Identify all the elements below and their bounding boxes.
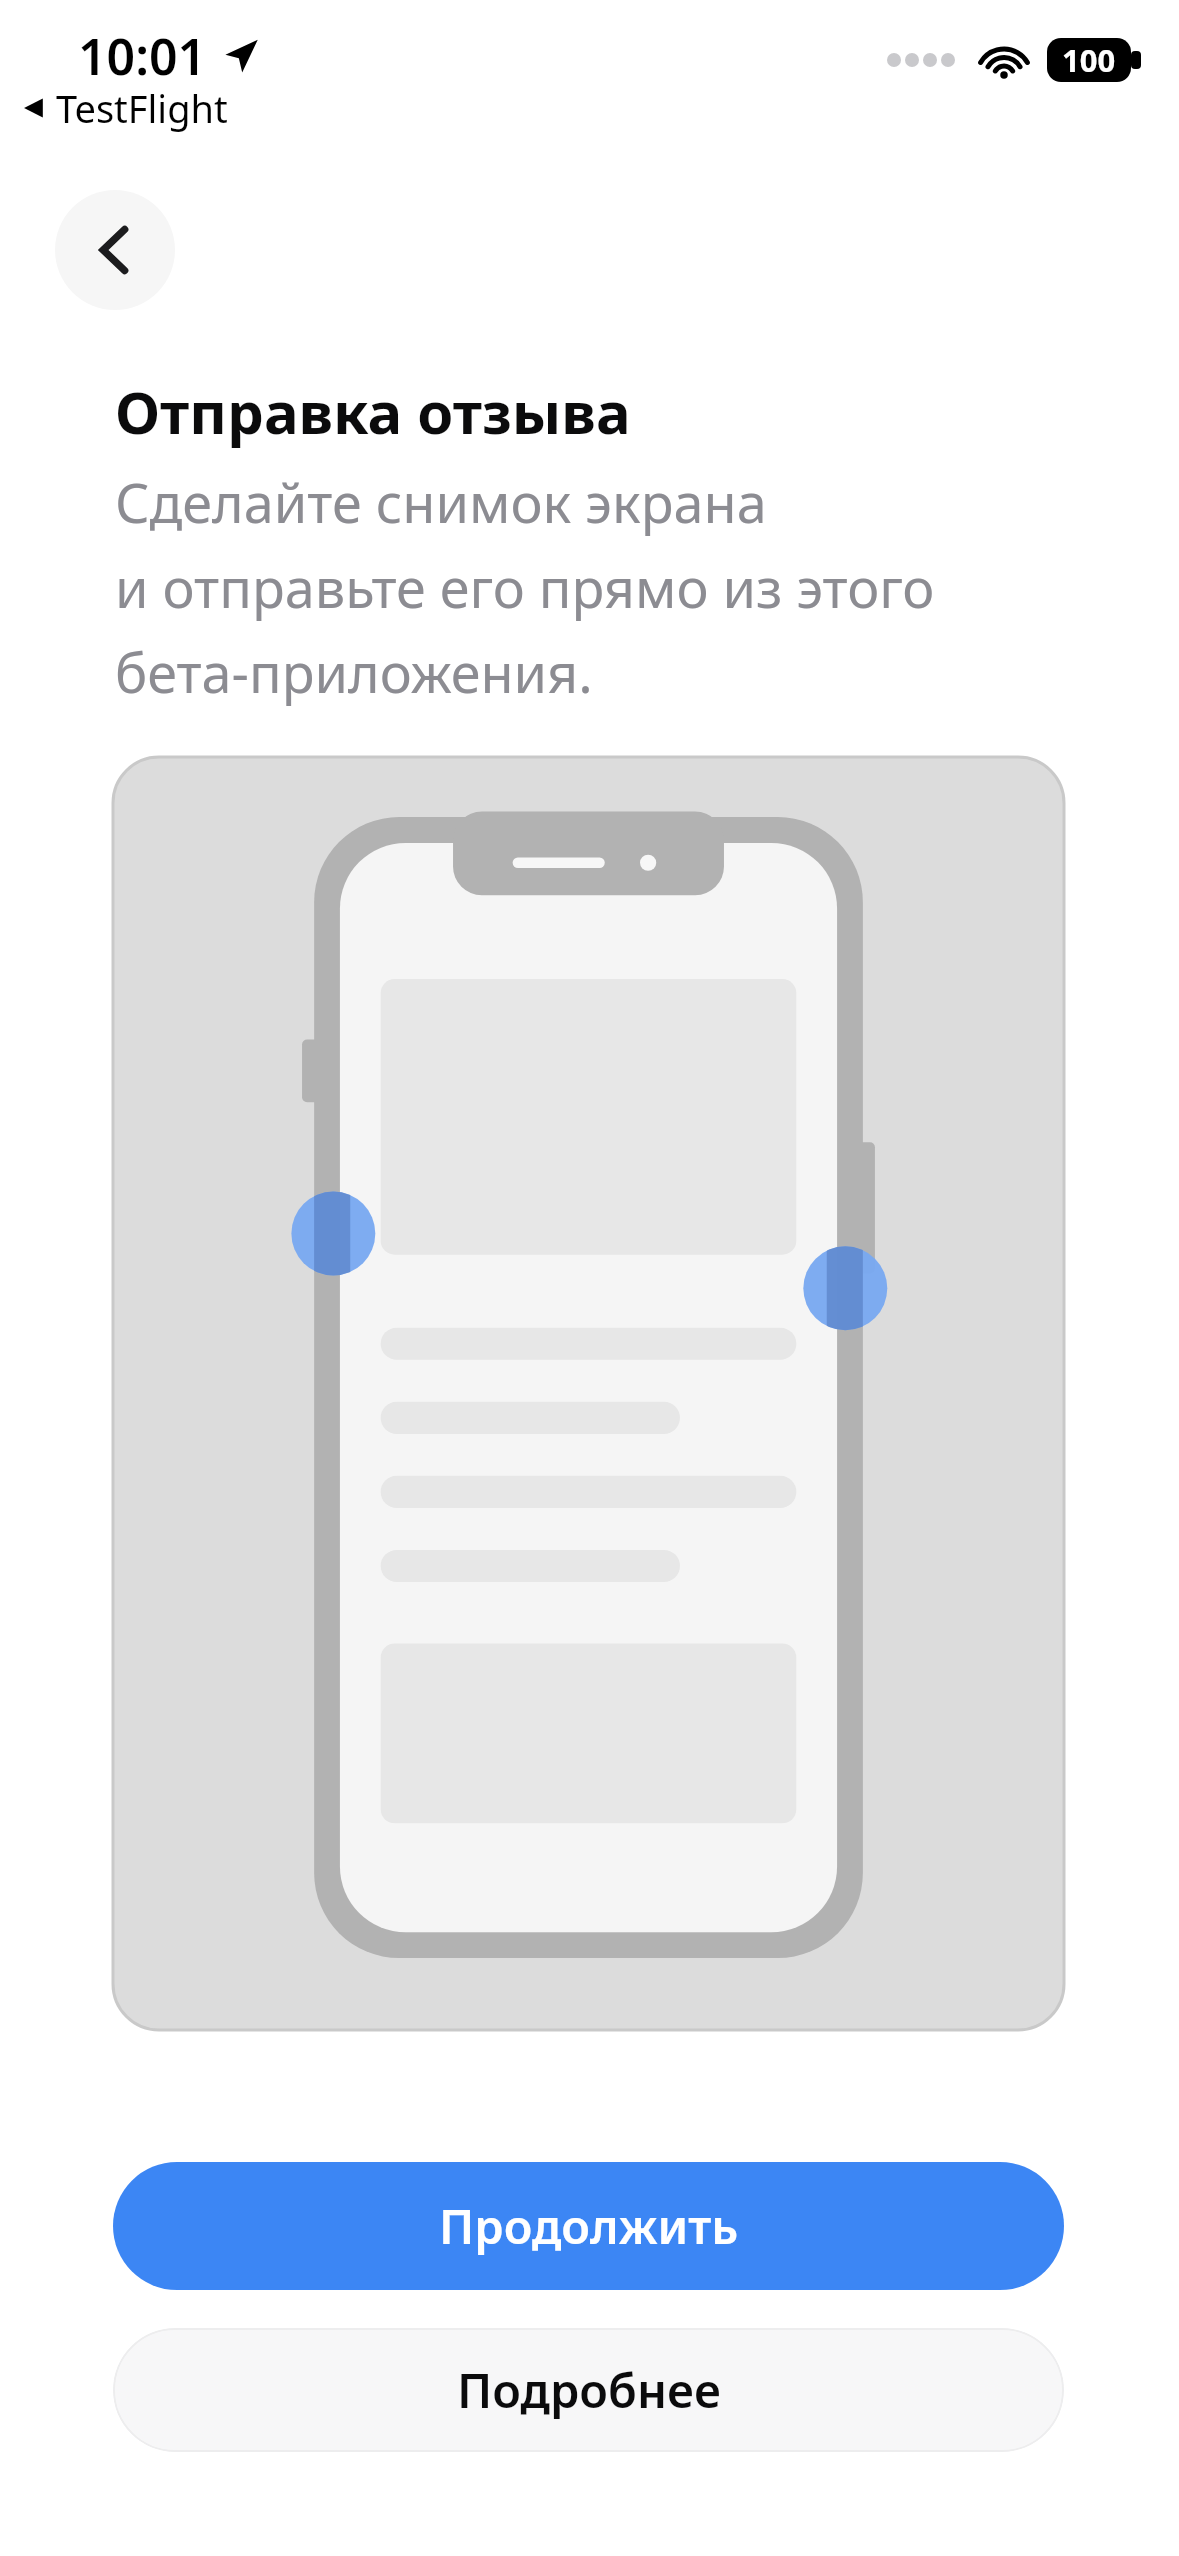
button[interactable]: Продолжить (113, 2162, 1064, 2290)
staticText: Отправка отзыва (115, 372, 631, 451)
button[interactable]: Подробнее (113, 2328, 1064, 2452)
staticText: 100 (1062, 39, 1116, 81)
button[interactable]: Back (55, 190, 175, 310)
staticText: Сделайте снимок экрана и отправьте его п… (115, 465, 935, 709)
staticText: TestFlight (56, 82, 228, 134)
staticText: Подробнее (457, 2358, 721, 2422)
staticText: Продолжить (439, 2194, 739, 2258)
staticText: 10:01 (78, 22, 207, 90)
